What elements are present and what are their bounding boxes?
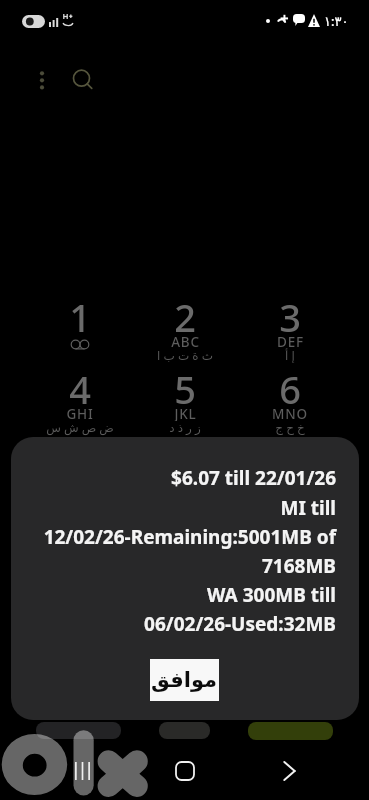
staticText: 6	[279, 363, 301, 405]
staticText: MNO	[272, 405, 308, 421]
staticText: JKL	[174, 405, 197, 421]
button[interactable]	[240, 357, 340, 431]
staticText: ABC	[171, 333, 200, 349]
staticText: GHI	[66, 405, 94, 421]
button[interactable]: Back	[269, 751, 309, 791]
button[interactable]: Recent apps	[62, 751, 102, 791]
button[interactable]	[135, 285, 235, 359]
button[interactable]: Keypad	[159, 722, 210, 739]
staticText: ١:٣٠	[324, 12, 349, 30]
button[interactable]: موافق	[150, 659, 219, 701]
staticText: خ ح ج	[275, 419, 305, 435]
staticText: DEF	[277, 333, 304, 349]
staticText: إ أ	[285, 347, 295, 363]
staticText: ز ر ذ د	[169, 419, 201, 435]
staticText: ض ص ش س	[46, 419, 114, 435]
button[interactable]: Call	[248, 722, 333, 740]
staticText: ث ة ت ب ا	[157, 347, 213, 363]
staticText: 5	[174, 363, 196, 405]
staticText: 1	[69, 291, 91, 333]
staticText: 2	[174, 291, 196, 333]
button[interactable]	[30, 285, 130, 359]
button[interactable]: Search	[65, 62, 99, 96]
button[interactable]: More options	[27, 62, 57, 92]
staticText: 4	[69, 363, 91, 405]
staticText: موافق	[151, 668, 218, 692]
staticText: $6.07 till 22/01/26 MI till 12/02/26-Rem…	[25, 465, 336, 636]
button[interactable]	[30, 357, 130, 431]
button[interactable]: Home	[165, 751, 205, 791]
button[interactable]: Add to contacts	[36, 722, 121, 739]
staticText: 3	[279, 291, 301, 333]
button[interactable]	[240, 285, 340, 359]
button[interactable]	[135, 357, 235, 431]
